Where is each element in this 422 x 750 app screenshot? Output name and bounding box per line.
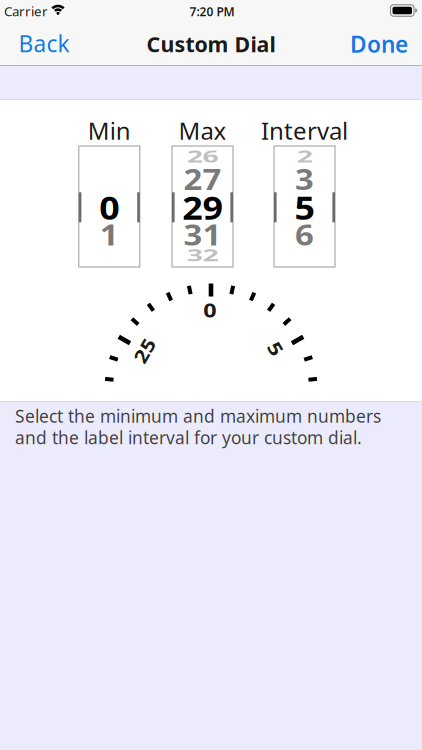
staticText: 1 [101, 214, 118, 253]
staticText: 0 [205, 298, 216, 323]
staticText: Max [178, 115, 226, 146]
staticText: Interval [261, 115, 348, 146]
button[interactable]: Done [350, 29, 408, 59]
staticText: Select the minimum and maximum numbers [15, 404, 381, 427]
button[interactable]: Maximum [172, 146, 233, 267]
staticText: 5 [270, 336, 281, 361]
staticText: 32 [188, 238, 216, 272]
staticText: Back [18, 28, 69, 58]
staticText: and the label interval for your custom d… [15, 426, 362, 449]
staticText: 25 [134, 338, 156, 363]
staticText: 7:20 PM [189, 3, 234, 19]
staticText: 5 [295, 186, 313, 229]
staticText: 2 [297, 140, 311, 173]
staticText: Min [88, 115, 131, 146]
staticText: Carrier [4, 2, 48, 20]
staticText: 3 [296, 159, 313, 198]
staticText: Done [350, 29, 408, 59]
staticText: Custom Dial [146, 30, 275, 58]
button[interactable]: Interval [274, 146, 335, 267]
staticText: 29 [184, 186, 220, 229]
button[interactable]: Back [18, 28, 69, 58]
staticText: 31 [185, 214, 219, 253]
staticText: 26 [188, 140, 216, 173]
staticText: 27 [185, 159, 219, 198]
button[interactable]: Minimum [79, 146, 140, 267]
staticText: 6 [296, 214, 313, 253]
staticText: 0 [100, 186, 118, 229]
